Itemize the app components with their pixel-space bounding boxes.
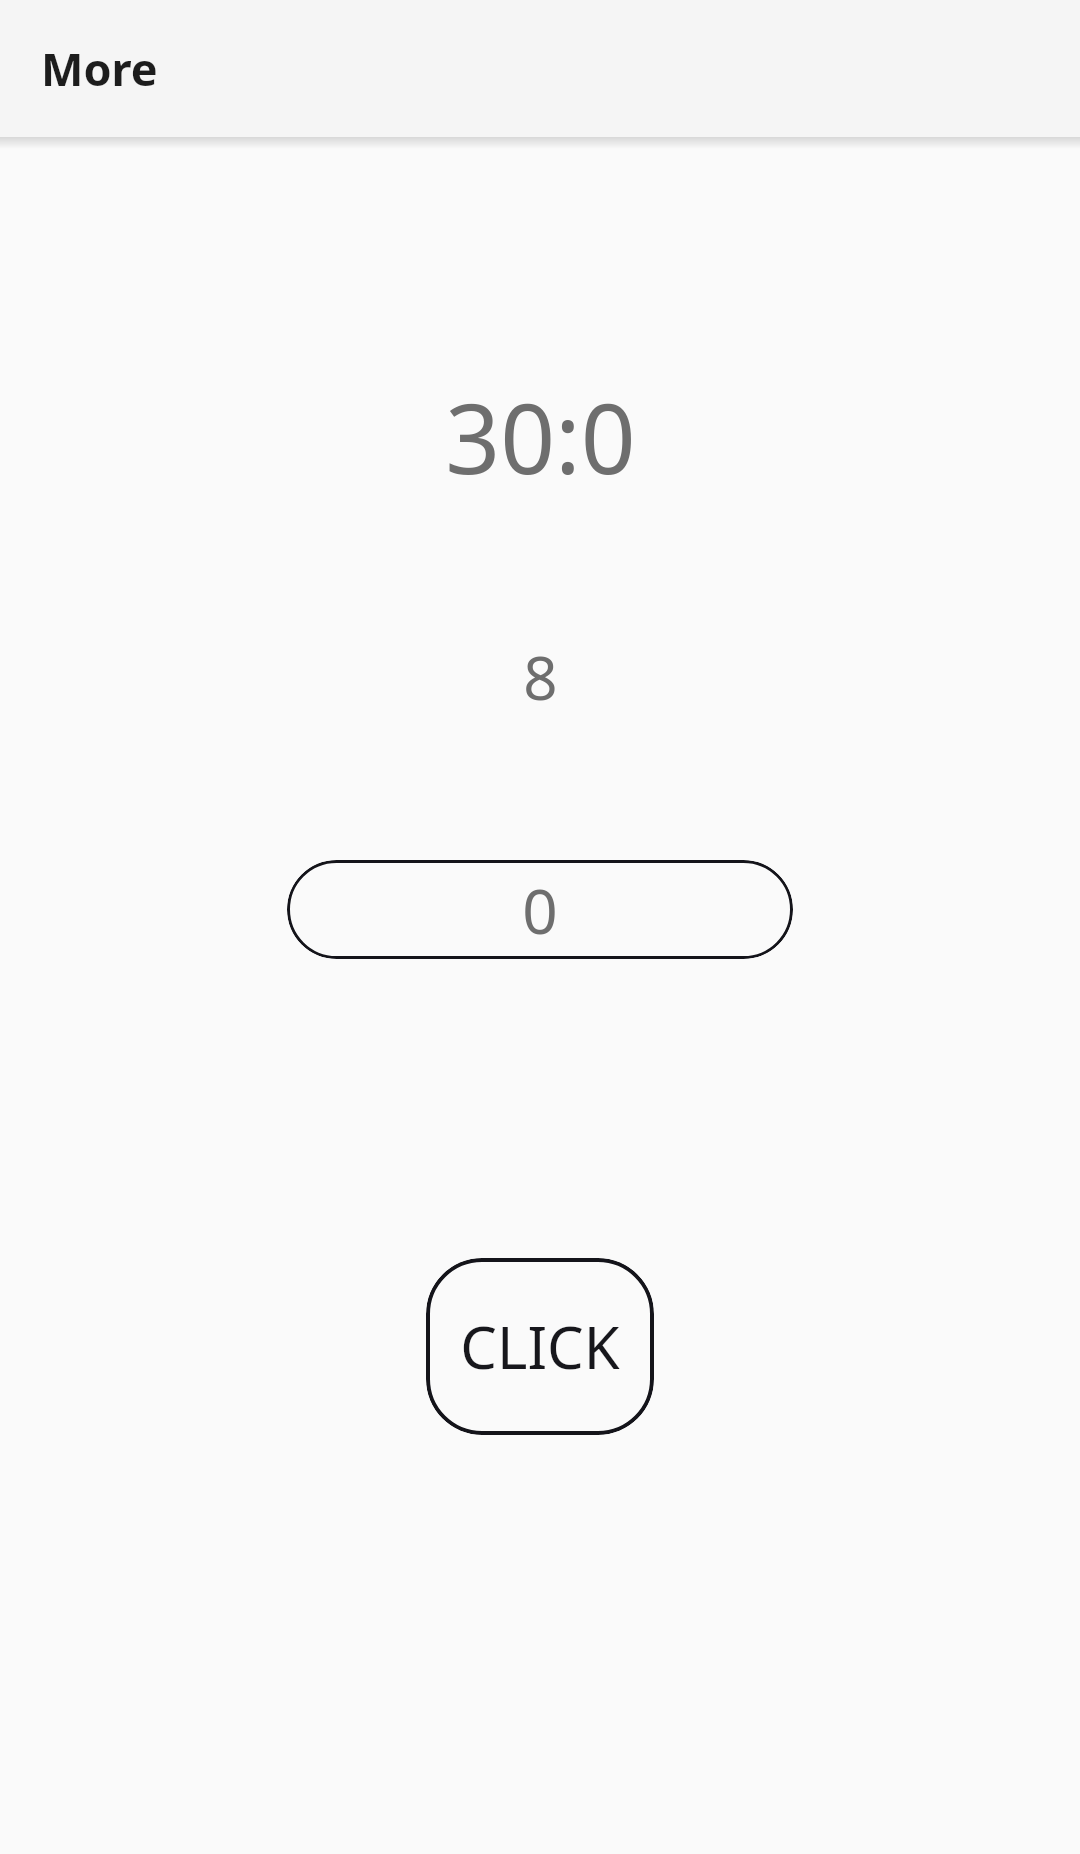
staticText: CLICK: [460, 1307, 620, 1386]
staticText: 30:0: [445, 371, 636, 502]
button[interactable]: 0: [287, 860, 793, 959]
staticText: More: [41, 38, 158, 99]
button[interactable]: Click: [426, 1258, 654, 1435]
staticText: 8: [523, 636, 558, 718]
staticText: 0: [522, 868, 558, 952]
